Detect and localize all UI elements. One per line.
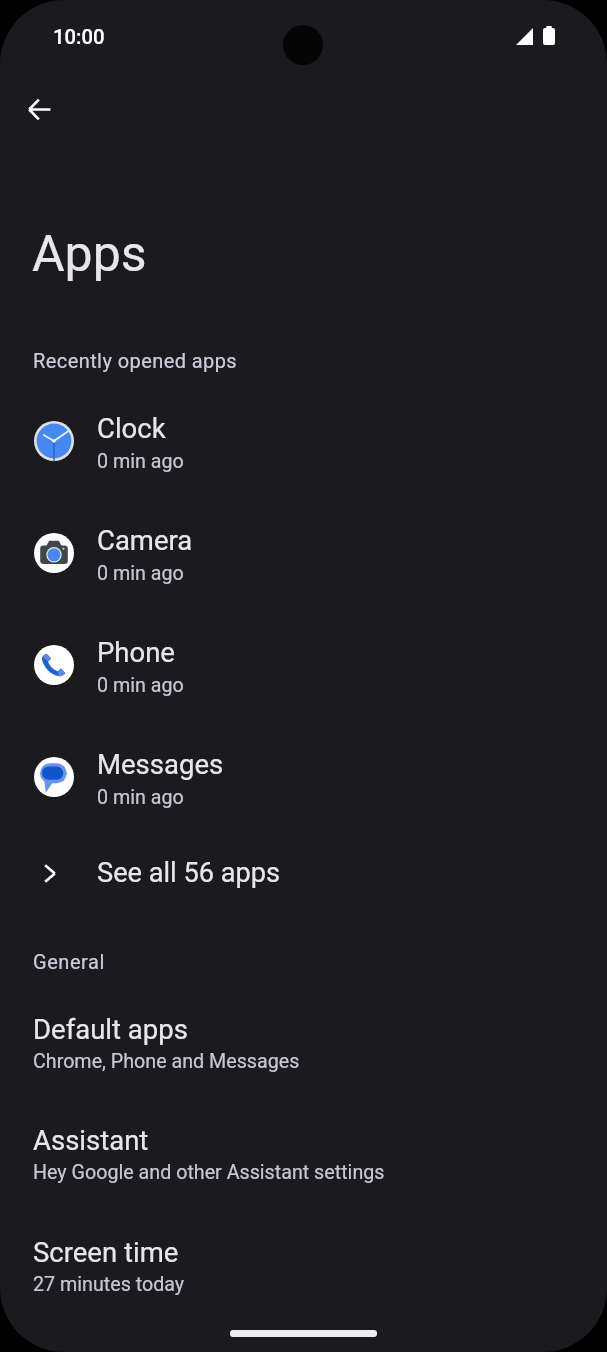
staticText: Hey Google and other Assistant settings [33, 1161, 385, 1184]
button[interactable]: Screen time [0, 1220, 607, 1320]
staticText: 0 min ago [97, 786, 184, 809]
staticText: 0 min ago [97, 562, 184, 585]
staticText: Screen time [33, 1236, 179, 1268]
staticText: See all 56 apps [97, 857, 281, 889]
button[interactable]: Camera [0, 497, 607, 609]
button[interactable]: Clock [0, 385, 607, 497]
staticText: Recently opened apps [33, 349, 238, 372]
staticText: Apps [32, 225, 147, 284]
staticText: Camera [97, 524, 193, 556]
staticText: Assistant [33, 1124, 149, 1156]
button[interactable]: Phone [0, 609, 607, 721]
staticText: Messages [97, 748, 224, 780]
staticText: 27 minutes today [33, 1273, 185, 1296]
staticText: 10:00 [53, 25, 105, 49]
staticText: Phone [97, 636, 175, 668]
button[interactable]: Back [14, 85, 62, 133]
staticText: General [33, 950, 105, 973]
button[interactable]: Assistant [0, 1108, 607, 1208]
staticText: Chrome, Phone and Messages [33, 1050, 300, 1073]
staticText: Clock [97, 412, 166, 444]
staticText: 0 min ago [97, 674, 184, 697]
staticText: Default apps [33, 1013, 188, 1045]
staticText: 0 min ago [97, 450, 184, 473]
button[interactable]: See all 56 apps [0, 829, 607, 913]
button[interactable]: Messages [0, 721, 607, 833]
button[interactable]: Default apps [0, 997, 607, 1097]
